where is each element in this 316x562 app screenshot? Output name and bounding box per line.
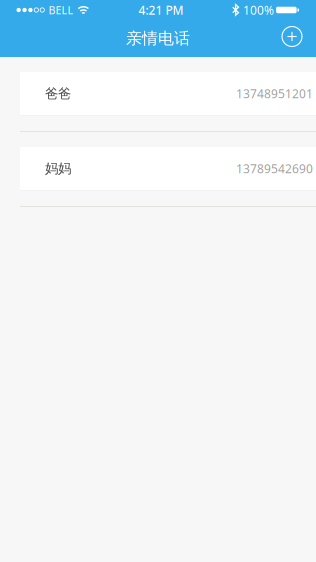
staticText: 13748951201 [236, 85, 313, 101]
staticText: 4:21 PM [138, 2, 183, 18]
button[interactable]: 妈妈 [20, 147, 316, 191]
staticText: 13789542690 [236, 160, 313, 176]
staticText: 100% [243, 2, 274, 18]
staticText: 妈妈 [45, 160, 71, 177]
button[interactable]: 爸爸 [20, 72, 316, 116]
staticText: BELL [48, 3, 73, 17]
staticText: 亲情电话 [126, 29, 190, 48]
staticText: 爸爸 [45, 85, 71, 102]
button[interactable]: Add contact [275, 21, 309, 55]
